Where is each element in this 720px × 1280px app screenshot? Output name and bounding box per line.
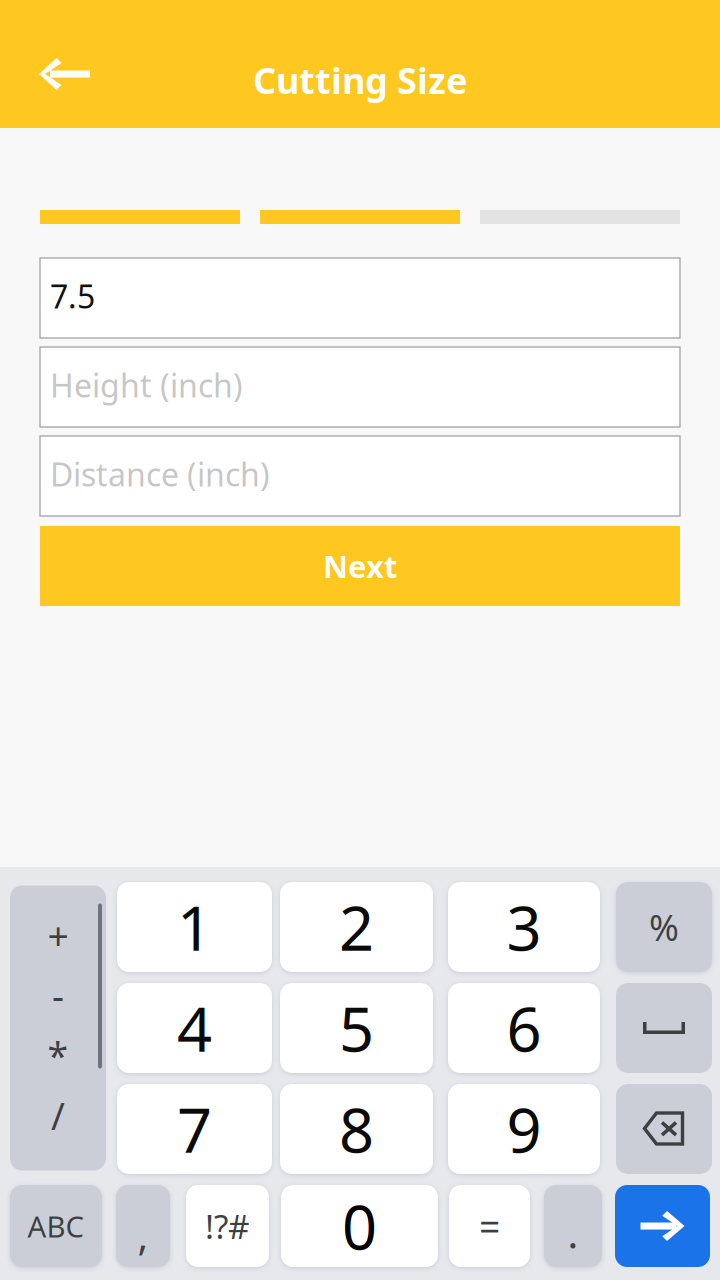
button[interactable]: 5 bbox=[280, 983, 433, 1073]
staticText: % bbox=[649, 903, 679, 951]
button[interactable]: 1 bbox=[117, 882, 272, 972]
staticText: 3 bbox=[506, 886, 541, 968]
button[interactable]: 8 bbox=[280, 1084, 433, 1174]
button[interactable]: Back bbox=[0, 0, 116, 128]
staticText: = bbox=[479, 1201, 500, 1251]
button[interactable]: = bbox=[449, 1185, 530, 1267]
button[interactable]: 3 bbox=[448, 882, 600, 972]
staticText: , bbox=[137, 1208, 148, 1261]
staticText: 2 bbox=[339, 886, 374, 968]
staticText: 7 bbox=[177, 1088, 212, 1170]
staticText: Next bbox=[323, 546, 397, 586]
button[interactable]: ABC bbox=[10, 1185, 102, 1267]
button[interactable]: Space bbox=[616, 983, 712, 1073]
button[interactable]: . bbox=[544, 1185, 602, 1267]
staticText: 0 bbox=[342, 1185, 377, 1267]
button[interactable]: , bbox=[116, 1185, 170, 1267]
button[interactable]: 6 bbox=[448, 983, 600, 1073]
staticText: Cutting Size bbox=[253, 56, 467, 104]
staticText: ABC bbox=[27, 1206, 84, 1245]
staticText: 4 bbox=[177, 987, 212, 1069]
staticText: 7.5 bbox=[50, 275, 95, 317]
staticText: / bbox=[51, 1091, 65, 1140]
button[interactable]: 0 bbox=[281, 1185, 438, 1267]
button[interactable]: 7 bbox=[117, 1084, 272, 1174]
staticText: !?# bbox=[205, 1204, 250, 1248]
staticText: 8 bbox=[339, 1088, 374, 1170]
button[interactable]: Enter bbox=[615, 1185, 710, 1267]
button[interactable]: Height (inch) bbox=[40, 347, 680, 427]
staticText: Height (inch) bbox=[50, 364, 243, 406]
button[interactable]: Operators bbox=[10, 885, 106, 1170]
staticText: - bbox=[52, 971, 64, 1020]
staticText: . bbox=[567, 1206, 578, 1259]
button[interactable]: 2 bbox=[280, 882, 433, 972]
staticText: 6 bbox=[506, 987, 541, 1069]
button[interactable]: Distance (inch) bbox=[40, 436, 680, 516]
button[interactable]: Next bbox=[40, 526, 680, 606]
button[interactable]: 7.5 bbox=[40, 258, 680, 338]
staticText: 5 bbox=[339, 987, 374, 1069]
button[interactable]: !?# bbox=[186, 1185, 269, 1267]
button[interactable]: % bbox=[616, 882, 712, 972]
button[interactable]: 9 bbox=[448, 1084, 600, 1174]
staticText: + bbox=[47, 911, 68, 960]
staticText: 1 bbox=[177, 886, 212, 968]
button[interactable]: 4 bbox=[117, 983, 272, 1073]
staticText: 9 bbox=[506, 1088, 541, 1170]
staticText: * bbox=[47, 1031, 68, 1080]
staticText: Distance (inch) bbox=[50, 453, 270, 495]
button[interactable]: Backspace bbox=[616, 1084, 712, 1174]
